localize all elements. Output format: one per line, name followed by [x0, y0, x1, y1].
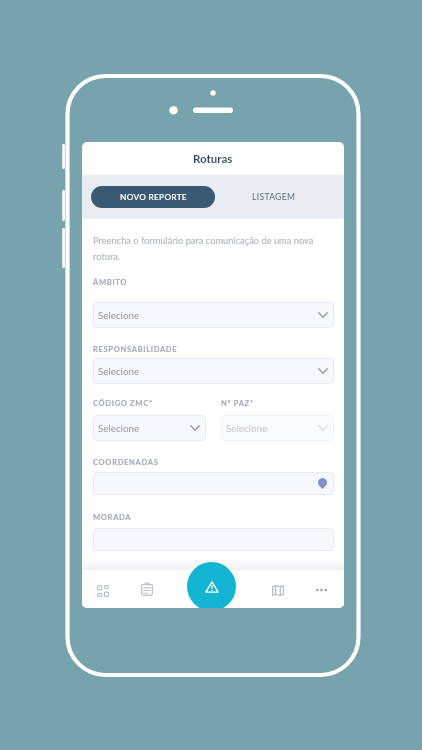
button[interactable]: Selecione: [93, 302, 334, 328]
staticText: CÓDIGO ZMC*: [93, 398, 153, 407]
button[interactable]: [93, 472, 334, 495]
staticText: Selecione: [98, 365, 140, 377]
staticText: NOVO REPORTE: [120, 192, 187, 202]
staticText: Preencha o formulário para comunicação d…: [93, 235, 333, 262]
button[interactable]: [93, 528, 334, 551]
staticText: Selecione: [226, 422, 268, 434]
staticText: RESPONSABILIDADE: [93, 344, 178, 353]
button[interactable]: NOVO REPORTE: [91, 186, 215, 208]
staticText: LISTAGEM: [252, 192, 296, 202]
staticText: Selecione: [98, 422, 140, 434]
staticText: MORADA: [93, 512, 132, 521]
button[interactable]: Reports: [132, 574, 162, 604]
button[interactable]: More: [306, 575, 336, 605]
button[interactable]: Selecione: [93, 415, 206, 441]
staticText: Selecione: [98, 309, 140, 321]
staticText: Nº PAZ*: [221, 398, 254, 407]
staticText: COORDENADAS: [93, 457, 159, 466]
button[interactable]: LISTAGEM: [214, 175, 333, 219]
button[interactable]: Dashboard: [88, 576, 118, 606]
button[interactable]: Selecione: [221, 415, 334, 441]
button[interactable]: Report new fault: [187, 562, 236, 608]
button[interactable]: Selecione: [93, 358, 334, 384]
staticText: Roturas: [193, 152, 233, 166]
button[interactable]: Map: [263, 575, 293, 605]
staticText: ÂMBITO: [93, 277, 128, 286]
